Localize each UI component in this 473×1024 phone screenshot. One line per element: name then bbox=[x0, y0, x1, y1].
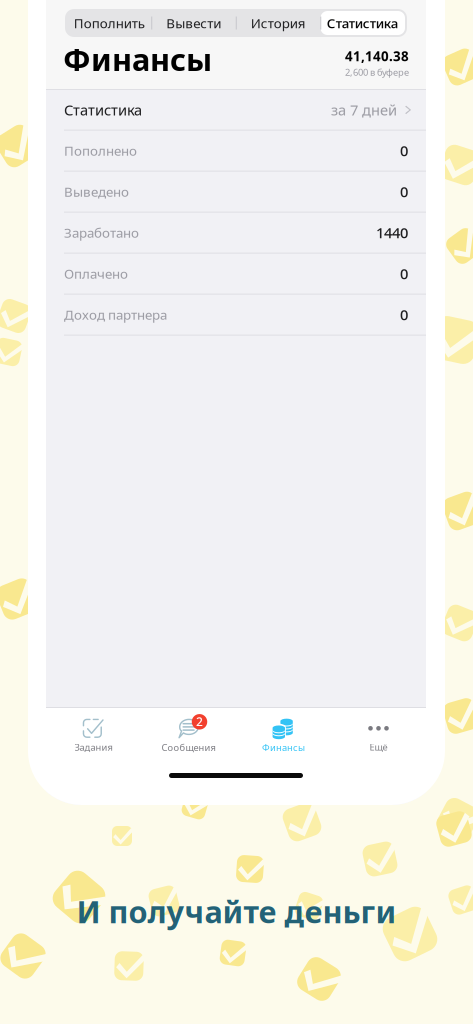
staticText: Статистика bbox=[64, 100, 142, 119]
staticText: 0 bbox=[400, 305, 408, 324]
button[interactable]: Пополнить bbox=[67, 11, 151, 35]
staticText: Заработано bbox=[64, 224, 139, 241]
button[interactable]: Задания bbox=[46, 719, 141, 753]
button[interactable]: Финансы bbox=[236, 718, 331, 754]
staticText: Финансы bbox=[63, 39, 212, 79]
staticText: 0 bbox=[400, 182, 408, 201]
staticText: Пополнено bbox=[64, 142, 137, 159]
staticText: Сообщения bbox=[161, 741, 215, 754]
staticText: Выведено bbox=[64, 183, 129, 200]
staticText: Пополнить bbox=[74, 14, 145, 32]
staticText: за 7 дней bbox=[331, 100, 397, 119]
button[interactable]: Вывести bbox=[151, 11, 236, 35]
staticText: Ещё bbox=[369, 741, 387, 753]
button[interactable]: Ещё bbox=[331, 719, 426, 753]
staticText: Задания bbox=[74, 741, 112, 753]
staticText: 2,600 в буфере bbox=[345, 66, 409, 78]
staticText: Финансы bbox=[262, 741, 305, 754]
button[interactable]: 2 bbox=[141, 718, 236, 754]
staticText: Статистика bbox=[327, 14, 399, 32]
staticText: 2 bbox=[196, 713, 203, 729]
staticText: 0 bbox=[400, 264, 408, 283]
staticText: Оплачено bbox=[64, 265, 128, 282]
staticText: 41,140.38 bbox=[345, 47, 409, 65]
staticText: История bbox=[251, 14, 306, 32]
button[interactable]: Статистика bbox=[320, 11, 405, 35]
staticText: 1440 bbox=[376, 223, 408, 242]
staticText: И получайте деньги bbox=[76, 891, 396, 932]
button[interactable]: Статистика bbox=[46, 90, 426, 130]
staticText: Доход партнера bbox=[64, 306, 167, 323]
staticText: Вывести bbox=[166, 14, 221, 32]
button[interactable]: История bbox=[236, 11, 320, 35]
staticText: 0 bbox=[400, 141, 408, 160]
